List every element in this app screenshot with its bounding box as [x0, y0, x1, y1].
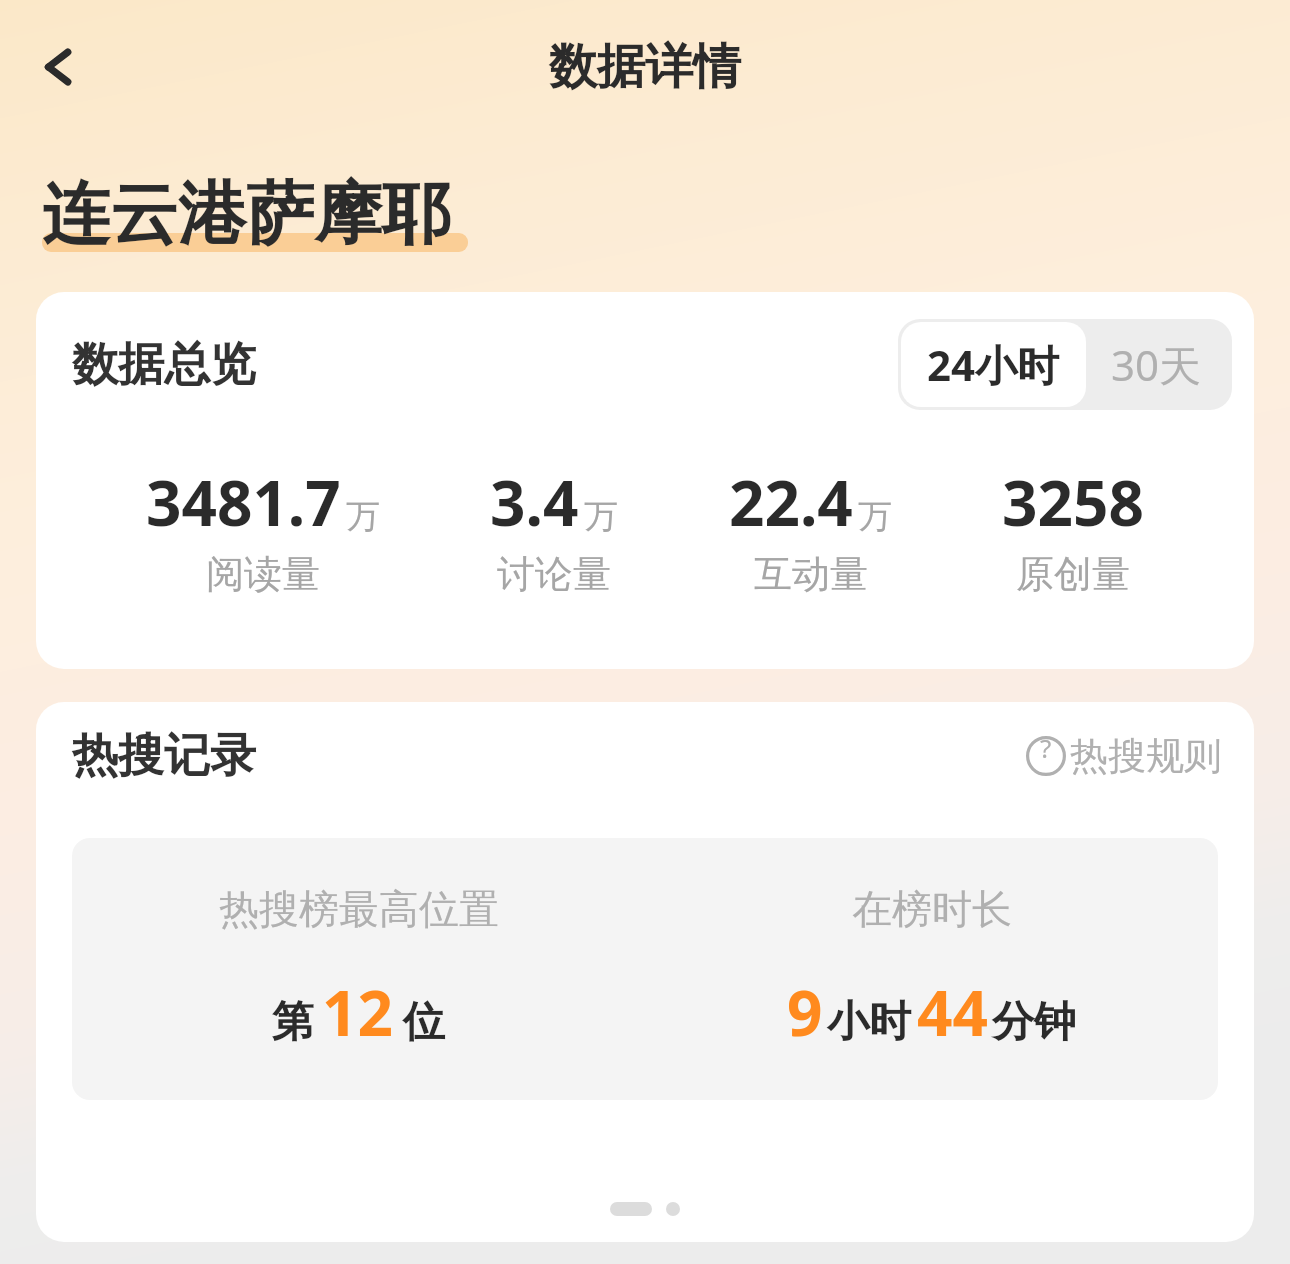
staticText: 数据总览 — [72, 336, 256, 394]
button[interactable]: 在榜时长 — [645, 838, 1218, 1100]
button[interactable]: Back — [14, 22, 104, 112]
staticText: 讨论量 — [497, 550, 611, 598]
button[interactable]: 24小时 — [901, 322, 1086, 407]
staticText: 小时 — [827, 996, 911, 1049]
staticText: 3.4 — [490, 460, 579, 544]
staticText: 万 — [346, 495, 380, 538]
staticText: 9 — [787, 970, 823, 1054]
button[interactable]: 30天 — [1089, 319, 1232, 410]
staticText: 热搜记录 — [72, 727, 256, 785]
staticText: 数据详情 — [549, 37, 741, 97]
staticText: 3258 — [1002, 460, 1144, 544]
staticText: 原创量 — [1016, 550, 1130, 598]
button[interactable]: 22.4 — [721, 460, 900, 598]
staticText: 44 — [917, 970, 988, 1054]
button[interactable]: 3.4 — [482, 460, 626, 598]
button[interactable]: 热搜规则 — [1022, 728, 1226, 784]
staticText: 22.4 — [729, 460, 853, 544]
staticText: 互动量 — [754, 550, 868, 598]
staticText: 万 — [584, 495, 618, 538]
button[interactable]: 3258 — [994, 460, 1152, 598]
staticText: 分钟 — [992, 996, 1076, 1049]
staticText: 第 — [272, 996, 314, 1049]
staticText: 在榜时长 — [852, 884, 1012, 934]
staticText: 热搜规则 — [1070, 732, 1222, 780]
staticText: 24小时 — [927, 336, 1060, 393]
staticText: 12 — [322, 970, 393, 1054]
staticText: 30天 — [1111, 336, 1202, 393]
staticText: 万 — [858, 495, 892, 538]
button[interactable]: 热搜榜最高位置 — [72, 838, 645, 1100]
staticText: 连云港萨摩耶 — [42, 172, 450, 258]
staticText: 热搜榜最高位置 — [219, 884, 499, 934]
staticText: ? — [1040, 730, 1052, 765]
staticText: 位 — [403, 996, 445, 1049]
staticText: 阅读量 — [206, 550, 320, 598]
staticText: 3481.7 — [146, 460, 341, 544]
button[interactable]: 3481.7 — [138, 460, 388, 598]
